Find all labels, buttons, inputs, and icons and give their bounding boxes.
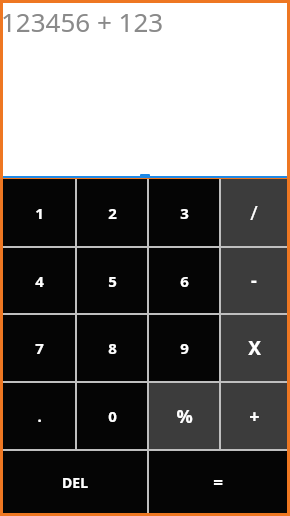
button[interactable]: =	[149, 451, 287, 513]
button[interactable]: /	[221, 179, 287, 246]
staticText: =	[213, 471, 223, 494]
button[interactable]: 1	[3, 179, 75, 246]
staticText: 3	[180, 203, 189, 223]
staticText: 123456 + 123	[1, 4, 164, 39]
button[interactable]: 4	[3, 248, 75, 313]
button[interactable]: .	[3, 383, 75, 449]
staticText: 5	[108, 271, 117, 291]
button[interactable]: 6	[149, 248, 219, 313]
button[interactable]: 5	[77, 248, 147, 313]
button[interactable]: %	[149, 383, 219, 449]
staticText: -	[251, 268, 257, 293]
staticText: 0	[108, 406, 117, 426]
button[interactable]: 2	[77, 179, 147, 246]
staticText: X	[248, 335, 261, 361]
button[interactable]: DEL	[3, 451, 147, 513]
button[interactable]: 3	[149, 179, 219, 246]
button[interactable]: 7	[3, 315, 75, 381]
staticText: 2	[108, 203, 117, 223]
button[interactable]: 0	[77, 383, 147, 449]
button[interactable]: +	[221, 383, 287, 449]
staticText: 6	[180, 271, 189, 291]
button[interactable]: X	[221, 315, 287, 381]
other: Resize keypad	[140, 174, 150, 177]
button[interactable]: 9	[149, 315, 219, 381]
button[interactable]: 8	[77, 315, 147, 381]
staticText: 8	[108, 338, 117, 358]
button[interactable]: -	[221, 248, 287, 313]
staticText: +	[249, 404, 260, 429]
staticText: 7	[35, 338, 44, 358]
staticText: 4	[35, 271, 44, 291]
staticText: 9	[180, 338, 189, 358]
staticText: /	[250, 199, 258, 226]
staticText: .	[37, 406, 42, 426]
staticText: DEL	[62, 473, 88, 492]
staticText: 1	[35, 203, 44, 223]
staticText: %	[176, 404, 193, 429]
